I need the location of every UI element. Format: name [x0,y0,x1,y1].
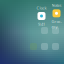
staticText: 9:41 [38,21,45,27]
staticText: Notes [51,2,61,8]
staticText: Grocery [51,19,61,29]
button[interactable]: Clock [36,5,47,27]
staticText: Clock [36,5,46,10]
button[interactable]: Notes [51,2,62,29]
